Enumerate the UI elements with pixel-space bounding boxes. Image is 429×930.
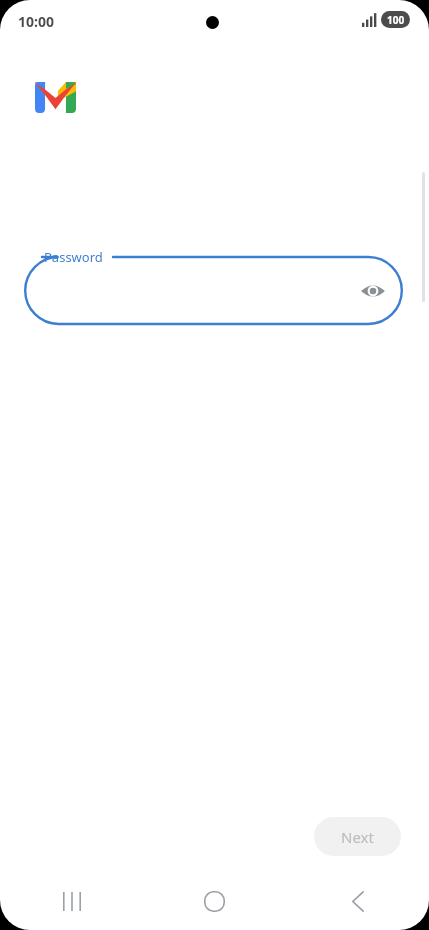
button[interactable]: Back — [286, 872, 429, 930]
staticText: 100 — [387, 13, 405, 27]
button[interactable]: Home — [143, 872, 286, 930]
button[interactable]: Password — [24, 248, 403, 326]
button[interactable]: Show password — [353, 271, 393, 311]
button[interactable]: Recent apps — [0, 872, 143, 930]
staticText: Next — [341, 827, 374, 847]
staticText: Password — [44, 248, 103, 266]
button[interactable]: Next — [314, 817, 401, 856]
staticText: 10:00 — [18, 12, 54, 31]
